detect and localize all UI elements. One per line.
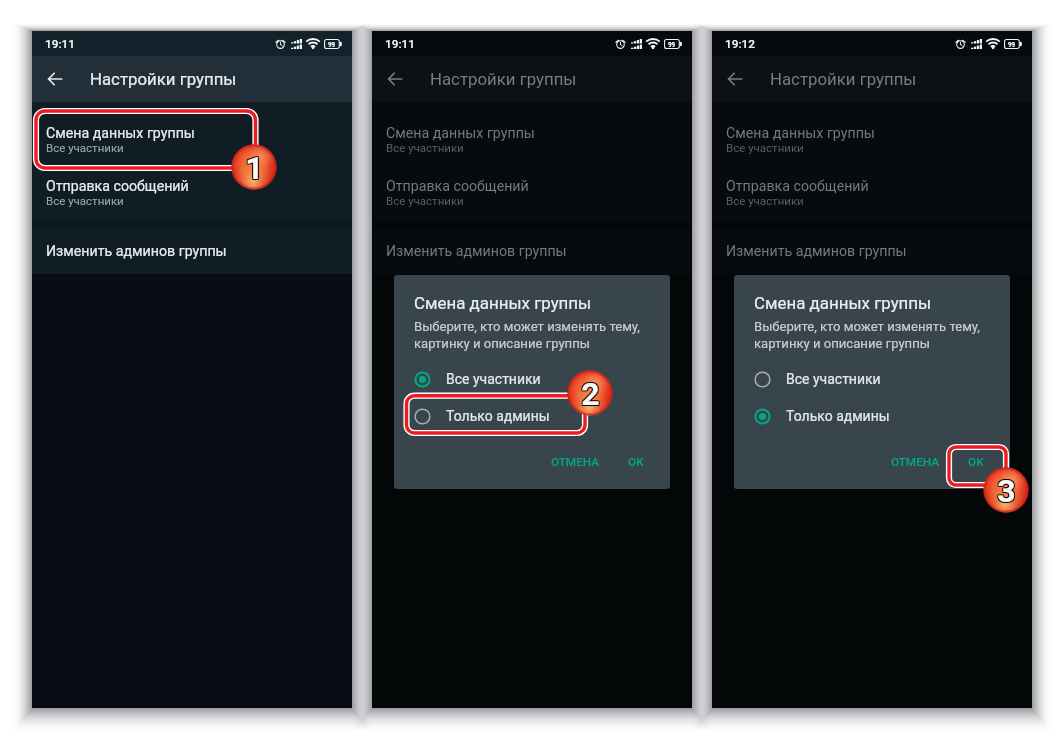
staticText: Выберите, кто может изменять тему, карти… <box>414 319 640 352</box>
button[interactable]: Отправка сообщений <box>712 178 1032 220</box>
staticText: Все участники <box>386 141 464 154</box>
button[interactable]: Только админы <box>748 401 996 431</box>
staticText: 2 <box>582 375 601 413</box>
button[interactable]: Back <box>378 62 412 96</box>
button[interactable]: Отправка сообщений <box>372 178 692 220</box>
staticText: Изменить админов группы <box>386 243 567 260</box>
staticText: 2 <box>581 376 600 414</box>
staticText: Изменить админов группы <box>46 243 227 260</box>
staticText: 19:11 <box>45 37 75 51</box>
staticText: Смена данных группы <box>386 125 535 142</box>
staticText: Изменить админов группы <box>726 243 907 260</box>
staticText: Выберите, кто может изменять тему, карти… <box>754 319 980 352</box>
staticText: ОТМЕНА <box>891 455 940 469</box>
staticText: Все участники <box>786 371 881 387</box>
staticText: 3 <box>998 472 1017 510</box>
button[interactable]: OK <box>620 448 652 476</box>
staticText: 3 <box>996 471 1015 509</box>
button[interactable]: Изменить админов группы <box>712 230 1032 274</box>
staticText: 2 <box>581 374 600 412</box>
staticText: Отправка сообщений <box>726 178 869 195</box>
staticText: 1 <box>246 148 265 186</box>
staticText: 19:12 <box>725 37 755 51</box>
staticText: 3 <box>998 473 1017 511</box>
staticText: 1 <box>246 149 265 187</box>
button[interactable]: Смена данных группы <box>372 125 692 167</box>
staticText: 1 <box>244 150 263 188</box>
staticText: 3 <box>996 472 1015 510</box>
staticText: Все участники <box>726 141 804 154</box>
staticText: 2 <box>582 376 601 414</box>
staticText: 99 <box>1008 41 1016 48</box>
staticText: Все участники <box>46 141 124 154</box>
button[interactable]: Смена данных группы <box>32 125 352 167</box>
staticText: Все участники <box>446 371 541 387</box>
button[interactable]: Только админы <box>408 401 656 431</box>
button[interactable]: Смена данных группы <box>712 125 1032 167</box>
staticText: 2 <box>580 374 599 412</box>
staticText: Смена данных группы <box>754 293 932 313</box>
staticText: 3 <box>997 471 1016 509</box>
staticText: Смена данных группы <box>46 125 195 142</box>
staticText: 99 <box>668 41 676 48</box>
button[interactable]: Все участники <box>408 364 656 394</box>
staticText: 2 <box>580 375 599 413</box>
staticText: 3 <box>996 473 1015 511</box>
staticText: Отправка сообщений <box>46 178 189 195</box>
staticText: ОТМЕНА <box>551 455 600 469</box>
button[interactable]: Изменить админов группы <box>32 230 352 274</box>
staticText: 1 <box>244 149 263 187</box>
staticText: OK <box>968 455 984 469</box>
staticText: Настройки группы <box>430 69 577 89</box>
staticText: 2 <box>580 376 599 414</box>
button[interactable]: ОТМЕНА <box>884 448 946 476</box>
staticText: Смена данных группы <box>726 125 875 142</box>
staticText: Настройки группы <box>770 69 917 89</box>
staticText: 1 <box>246 150 265 188</box>
staticText: Все участники <box>386 194 464 207</box>
button[interactable]: OK <box>960 448 992 476</box>
staticText: 99 <box>328 41 336 48</box>
staticText: 2 <box>582 374 601 412</box>
staticText: 1 <box>245 150 264 188</box>
button[interactable]: Back <box>718 62 752 96</box>
staticText: 3 <box>997 472 1016 510</box>
staticText: Только админы <box>446 408 550 424</box>
button[interactable]: ОТМЕНА <box>544 448 606 476</box>
staticText: Настройки группы <box>90 69 237 89</box>
button[interactable]: Отправка сообщений <box>32 178 352 220</box>
button[interactable]: Back <box>38 62 72 96</box>
staticText: 19:11 <box>385 37 415 51</box>
staticText: Все участники <box>46 194 124 207</box>
staticText: OK <box>628 455 644 469</box>
staticText: Все участники <box>726 194 804 207</box>
staticText: Отправка сообщений <box>386 178 529 195</box>
staticText: 1 <box>245 148 264 186</box>
staticText: 3 <box>997 473 1016 511</box>
staticText: Только админы <box>786 408 890 424</box>
button[interactable]: Все участники <box>748 364 996 394</box>
button[interactable]: Изменить админов группы <box>372 230 692 274</box>
staticText: Смена данных группы <box>414 293 592 313</box>
staticText: 1 <box>244 148 263 186</box>
staticText: 2 <box>581 375 600 413</box>
staticText: 3 <box>998 471 1017 509</box>
staticText: 1 <box>245 149 264 187</box>
